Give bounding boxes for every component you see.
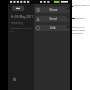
button[interactable]: Share xyxy=(35,7,69,13)
button[interactable]: Send xyxy=(35,16,69,22)
staticText: Send xyxy=(49,17,57,21)
staticText: Add/remove al xyxy=(73,3,90,6)
staticText: meeting xyxy=(11,21,23,25)
button[interactable] xyxy=(12,6,24,11)
staticText: Edit xyxy=(50,26,56,30)
button[interactable]: Attachment xyxy=(13,77,17,81)
button[interactable]: Edit xyxy=(35,25,69,31)
staticText: Fri 06 May 2011 xyxy=(11,15,34,19)
staticText: Place cursor events, tasks container a xyxy=(72,26,86,35)
staticText: Dave@location.com xyxy=(11,26,34,32)
staticText: Share xyxy=(49,8,58,12)
staticText: Buttons xyxy=(76,16,85,19)
